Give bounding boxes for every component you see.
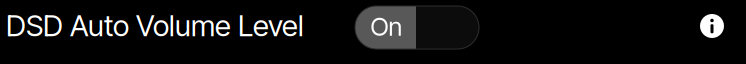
staticText: On	[370, 11, 402, 42]
button[interactable]: More Info	[697, 11, 727, 41]
staticText: DSD Auto Volume Level	[6, 8, 304, 43]
button[interactable]: On	[355, 6, 479, 49]
